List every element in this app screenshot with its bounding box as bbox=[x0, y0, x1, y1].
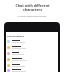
button[interactable] bbox=[6, 56, 58, 62]
button[interactable] bbox=[6, 38, 58, 44]
staticText: All with unique personalities bbox=[17, 15, 47, 18]
staticText: Conversations bbox=[7, 34, 25, 37]
button[interactable] bbox=[6, 68, 58, 72]
button[interactable] bbox=[6, 62, 58, 68]
button[interactable] bbox=[6, 50, 58, 56]
staticText: Chat with different characters bbox=[15, 3, 50, 13]
button[interactable] bbox=[6, 44, 58, 50]
